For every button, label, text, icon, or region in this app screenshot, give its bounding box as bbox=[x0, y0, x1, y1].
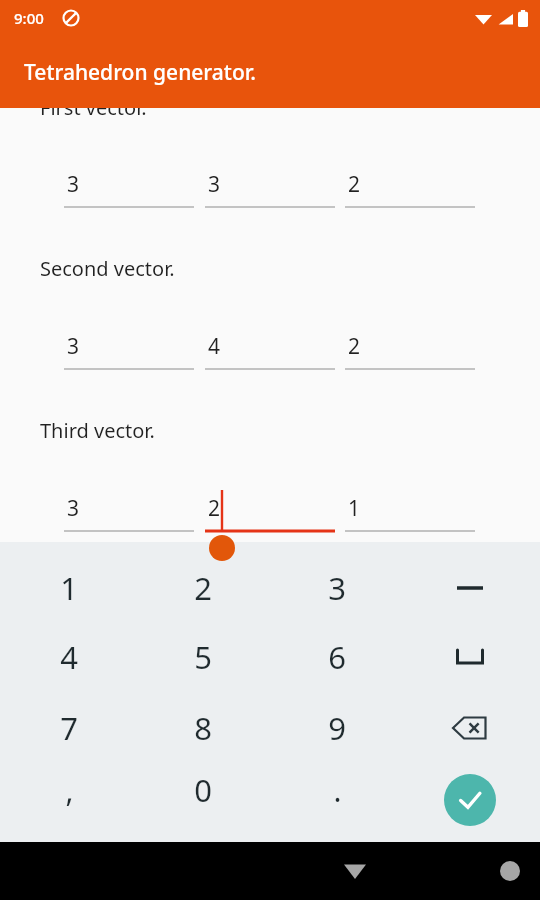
staticText: 0 bbox=[194, 769, 212, 811]
staticText: , bbox=[65, 770, 74, 811]
button[interactable]: 1 bbox=[13, 555, 125, 621]
staticText: 5 bbox=[194, 636, 212, 678]
button[interactable]: . bbox=[281, 757, 393, 823]
button[interactable]: 7 bbox=[13, 695, 125, 761]
button[interactable]: 4 bbox=[13, 624, 125, 690]
button[interactable]: 2 bbox=[345, 170, 475, 214]
button[interactable]: Backspace bbox=[414, 695, 526, 761]
button[interactable]: 2 bbox=[147, 555, 259, 621]
staticText: 2 bbox=[348, 332, 361, 361]
button[interactable]: 1 bbox=[345, 494, 475, 538]
button[interactable]: 6 bbox=[281, 624, 393, 690]
staticText: 7 bbox=[60, 707, 78, 749]
staticText: Third vector. bbox=[40, 417, 155, 444]
staticText: 8 bbox=[194, 707, 212, 749]
button[interactable]: 0 bbox=[147, 757, 259, 823]
button[interactable]: 3 bbox=[64, 332, 194, 376]
staticText: 9:00 bbox=[14, 8, 44, 28]
staticText: 3 bbox=[328, 567, 346, 609]
staticText: 2 bbox=[348, 170, 361, 199]
button[interactable]: Recents bbox=[394, 842, 540, 900]
staticText: 3 bbox=[67, 170, 80, 199]
staticText: First vector. bbox=[40, 94, 147, 121]
staticText: 6 bbox=[328, 636, 346, 678]
button[interactable]: 4 bbox=[205, 332, 335, 376]
button[interactable]: Home bbox=[240, 842, 540, 900]
button[interactable]: Minus bbox=[414, 555, 526, 621]
staticText: 3 bbox=[67, 332, 80, 361]
button[interactable]: 3 bbox=[64, 494, 194, 538]
button[interactable]: 3 bbox=[281, 555, 393, 621]
staticText: 4 bbox=[208, 332, 221, 361]
staticText: 9 bbox=[328, 707, 346, 749]
staticText: Tetrahedron generator. bbox=[24, 58, 256, 87]
staticText: . bbox=[333, 770, 342, 811]
button[interactable]: Back bbox=[85, 842, 540, 900]
staticText: 3 bbox=[67, 494, 80, 523]
button[interactable]: Confirm bbox=[444, 774, 496, 826]
staticText: 2 bbox=[208, 494, 221, 523]
button[interactable]: Space bbox=[414, 624, 526, 690]
button[interactable]: 2 bbox=[205, 494, 335, 538]
button[interactable]: 3 bbox=[205, 170, 335, 214]
staticText: Second vector. bbox=[40, 255, 175, 282]
button[interactable]: 2 bbox=[345, 332, 475, 376]
staticText: 1 bbox=[348, 494, 361, 523]
button[interactable]: 9 bbox=[281, 695, 393, 761]
staticText: 1 bbox=[60, 567, 78, 609]
staticText: 2 bbox=[194, 567, 212, 609]
button[interactable]: 3 bbox=[64, 170, 194, 214]
staticText: 3 bbox=[208, 170, 221, 199]
button[interactable]: Switch keyboard bbox=[487, 842, 540, 900]
button[interactable]: 8 bbox=[147, 695, 259, 761]
button[interactable]: , bbox=[13, 757, 125, 823]
staticText: 4 bbox=[60, 636, 78, 678]
button[interactable]: 5 bbox=[147, 624, 259, 690]
